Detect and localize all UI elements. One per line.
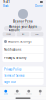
staticText: Privacy Policy [4, 68, 21, 71]
staticText: Photos [6, 33, 11, 35]
button[interactable]: Notifications [2, 46, 44, 54]
staticText: Home [4, 93, 8, 95]
button[interactable]: Privacy Policy [2, 66, 44, 72]
button[interactable]: Notes [31, 32, 43, 36]
button[interactable]: Account settings [2, 37, 44, 45]
staticText: Notes [35, 33, 39, 35]
button[interactable]: Shared [11, 88, 23, 95]
button[interactable]: Terms of Service [2, 73, 44, 79]
button[interactable]: Privacy & Security [2, 54, 44, 62]
staticText: Back [3, 4, 8, 8]
staticText: Notifications [4, 48, 21, 51]
staticText: Privacy & Security [4, 56, 26, 60]
button[interactable]: Manage your Apple Account [4, 26, 42, 31]
staticText: Me [39, 93, 41, 95]
staticText: Sign out [4, 80, 16, 84]
button[interactable]: Files [17, 32, 29, 36]
staticText: Done [35, 4, 43, 8]
button[interactable]: Photos [3, 32, 15, 36]
staticText: Manage your Apple Account [8, 25, 37, 32]
button[interactable]: Sign out [2, 79, 44, 85]
button[interactable]: Back [3, 4, 9, 8]
staticText: Recent [26, 93, 31, 95]
button[interactable]: Home [0, 88, 11, 95]
button[interactable]: Done [34, 4, 43, 8]
button[interactable]: Recent [23, 88, 34, 95]
staticText: eleanor@example.com [15, 23, 31, 25]
staticText: 9:41 [3, 0, 10, 4]
staticText: Eleanor Pena [13, 20, 33, 23]
button[interactable]: Me [34, 88, 46, 95]
staticText: Account settings [8, 40, 31, 43]
staticText: Files [21, 33, 24, 35]
staticText: Terms of Service [4, 74, 25, 77]
